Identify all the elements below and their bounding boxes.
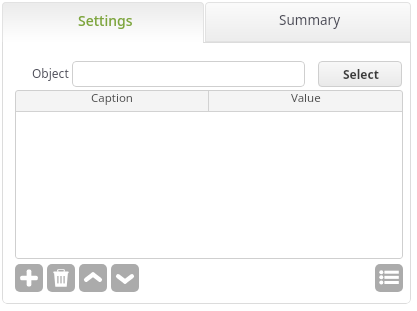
staticText: Summary [279,11,341,29]
staticText: Value [291,90,321,106]
button[interactable]: Move down [111,264,139,292]
staticText: Caption [91,90,133,106]
button[interactable]: Summary [205,2,411,42]
button[interactable]: Select [318,61,402,87]
staticText: Object [32,65,69,81]
button[interactable]: Delete [47,264,75,292]
button[interactable]: Move up [79,264,107,292]
button[interactable] [72,61,305,87]
button[interactable]: Add [15,264,43,292]
staticText: Settings [78,11,133,30]
button[interactable]: Settings [2,2,204,44]
staticText: Select [343,66,379,82]
button[interactable]: List options [375,264,403,292]
